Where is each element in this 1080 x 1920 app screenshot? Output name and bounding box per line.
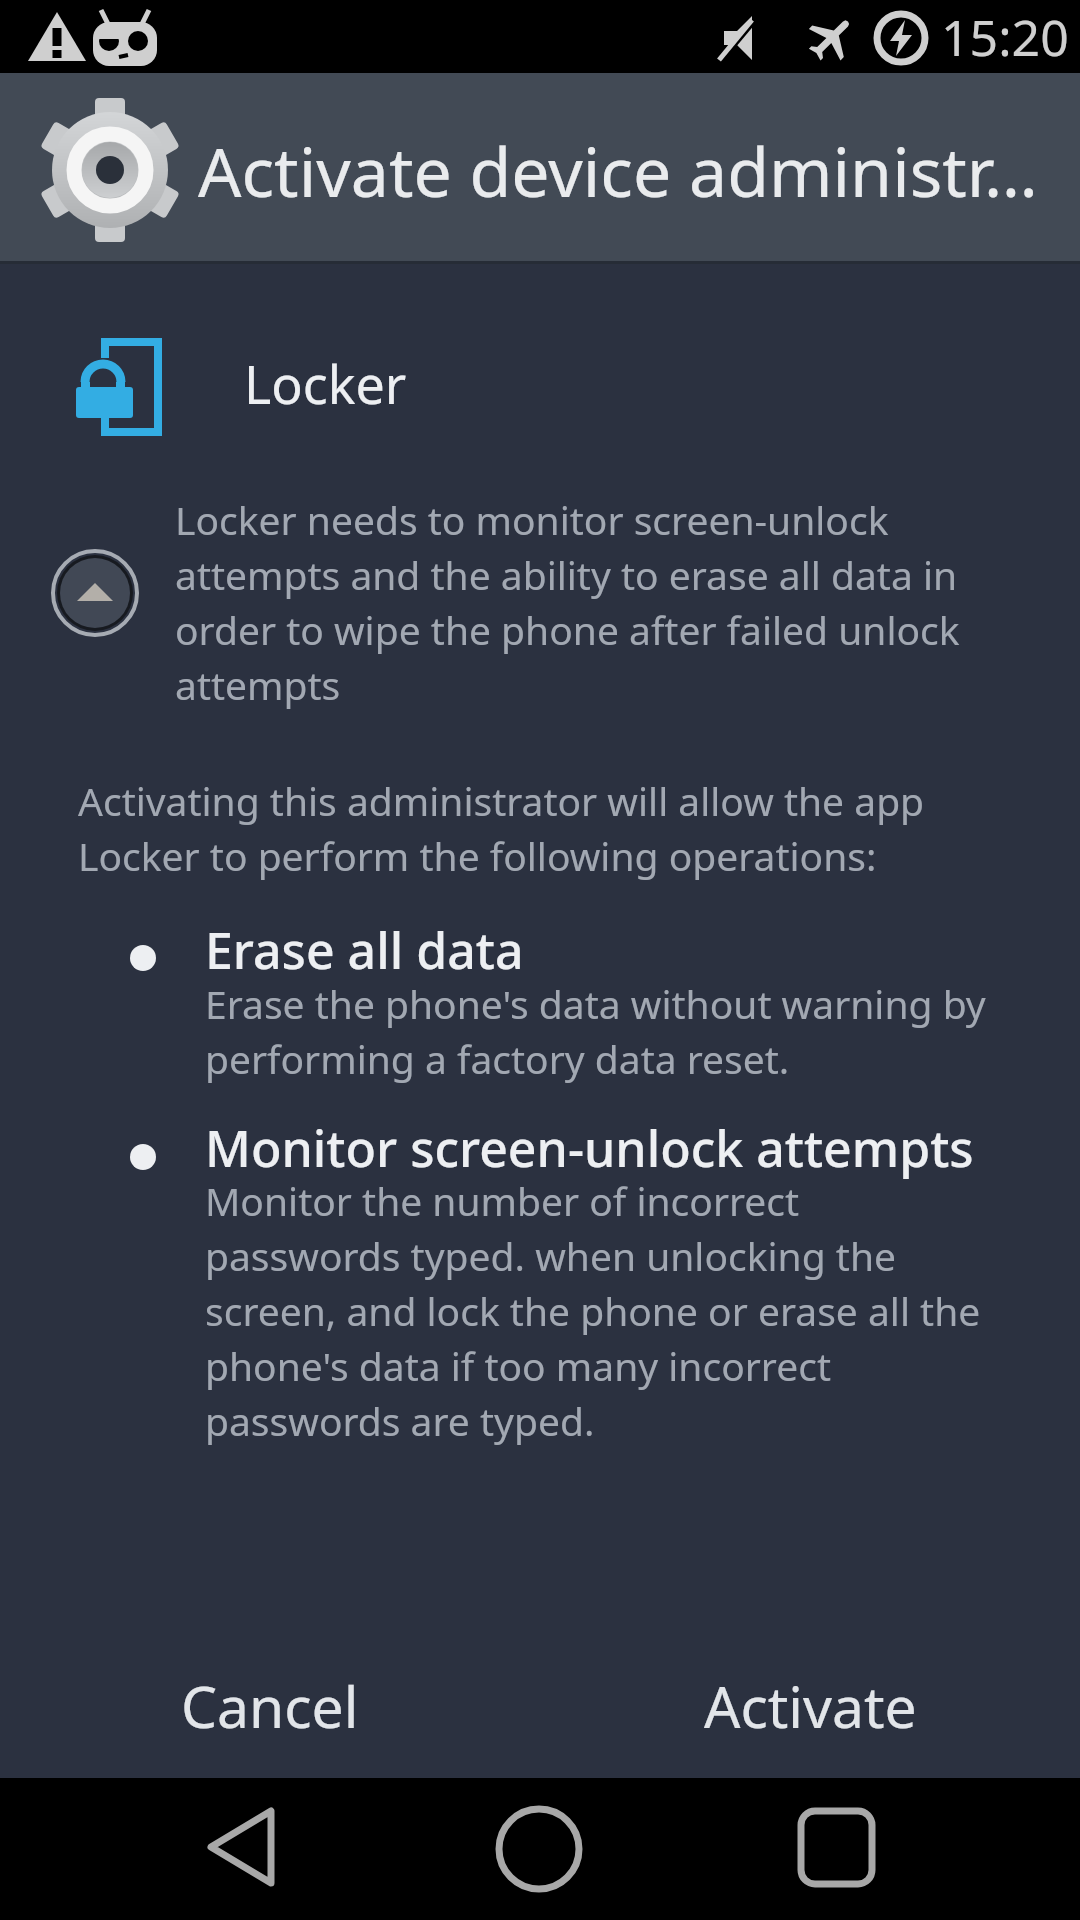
button[interactable]: Cancel: [0, 1651, 540, 1761]
staticText: Activate: [704, 1667, 917, 1745]
button[interactable]: [720, 1778, 1080, 1920]
button[interactable]: [360, 1778, 720, 1920]
staticText: Monitor the number of incorrect password…: [205, 1174, 981, 1448]
staticText: Erase all data: [205, 916, 524, 984]
staticText: Erase the phone's data without warning b…: [205, 977, 986, 1086]
staticText: Locker: [244, 348, 407, 419]
button[interactable]: [53, 551, 137, 635]
staticText: Activating this administrator will allow…: [78, 774, 925, 883]
button[interactable]: [0, 1778, 360, 1920]
staticText: Cancel: [181, 1667, 359, 1745]
staticText: Monitor screen-unlock attempts: [205, 1114, 974, 1182]
staticText: 15:20: [941, 3, 1069, 71]
staticText: Activate device administr…: [198, 124, 1038, 217]
staticText: Locker needs to monitor screen-unlock at…: [175, 493, 960, 712]
button[interactable]: Activate: [540, 1651, 1080, 1761]
